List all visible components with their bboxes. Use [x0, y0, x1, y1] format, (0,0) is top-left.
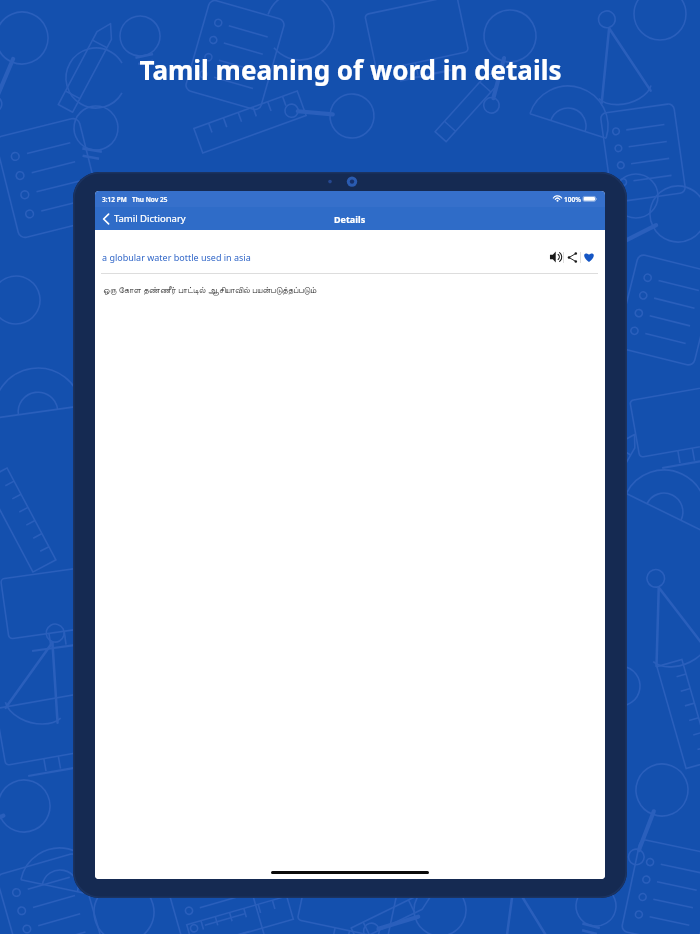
button[interactable]: Share [564, 249, 580, 265]
staticText: 3:12 PM [102, 195, 127, 204]
staticText: Details [334, 213, 366, 225]
staticText: Tamil Dictionary [114, 212, 186, 225]
staticText: 100% [564, 195, 581, 204]
staticText: Thu Nov 25 [132, 195, 168, 204]
button[interactable]: a globular water bottle used in asia [102, 251, 541, 263]
staticText: ஒரு கோள தண்ணீர் பாட்டில் ஆசியாவில் பயன்ப… [103, 284, 317, 296]
button[interactable]: Back [95, 207, 194, 230]
button[interactable]: Favourite [581, 249, 597, 265]
staticText: Tamil meaning of word in details [139, 52, 562, 87]
button[interactable]: Pronounce [547, 249, 563, 265]
staticText: a globular water bottle used in asia [102, 251, 251, 263]
other: Back [101, 214, 111, 224]
